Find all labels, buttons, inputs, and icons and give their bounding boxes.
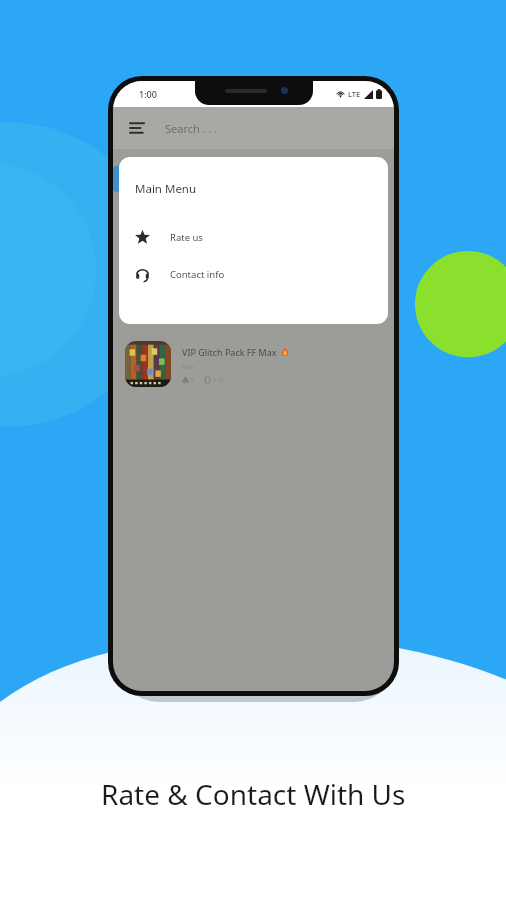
staticText: Search . . . <box>165 121 218 136</box>
button[interactable]: Contact info <box>119 261 388 287</box>
button[interactable]: Rate us <box>119 224 388 250</box>
staticText: 1:00 <box>139 88 157 100</box>
staticText: VIP Glitch Pack FF Max <box>182 346 277 358</box>
staticText: 0 <box>191 376 195 383</box>
staticText: 0.00 <box>213 376 224 383</box>
button[interactable]: Open navigation menu <box>121 112 153 144</box>
button[interactable]: VIP Glitch Pack FF Max <box>113 335 394 393</box>
staticText: Max <box>182 363 194 371</box>
staticText: LTE <box>348 89 361 99</box>
staticText: Rate & Contact With Us <box>101 775 406 813</box>
staticText: Main Menu <box>135 181 197 197</box>
button[interactable]: Action <box>113 165 135 193</box>
staticText: Rate us <box>170 231 203 244</box>
staticText: Contact info <box>170 268 225 281</box>
